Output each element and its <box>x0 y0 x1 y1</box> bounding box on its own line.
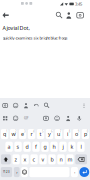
staticText: k <box>70 143 73 150</box>
button[interactable] <box>57 154 65 164</box>
button[interactable]: Undo <box>31 101 42 109</box>
staticText: s <box>17 143 20 150</box>
staticText: o <box>75 130 78 138</box>
staticText: 6 <box>51 130 53 133</box>
button[interactable]: Emoji <box>10 114 21 122</box>
staticText: 5 <box>42 130 44 133</box>
staticText: d <box>25 143 28 150</box>
button[interactable]: 4 <box>28 129 35 139</box>
staticText: m <box>67 156 72 163</box>
button[interactable]: GIF <box>21 114 31 122</box>
button[interactable]: Account <box>66 12 72 18</box>
staticText: e <box>21 130 24 138</box>
staticText: p <box>84 130 87 138</box>
button[interactable]: 5 <box>37 129 44 139</box>
button[interactable] <box>66 154 74 164</box>
button[interactable]: Enter <box>79 167 89 177</box>
staticText: g <box>43 143 46 150</box>
button[interactable]: Themes <box>51 114 63 122</box>
staticText: 0 <box>87 130 89 133</box>
button[interactable]: 3 <box>19 129 26 139</box>
staticText: f <box>35 143 37 150</box>
button[interactable] <box>75 154 87 164</box>
button[interactable]: 7 <box>55 129 62 139</box>
button[interactable]: , <box>14 167 20 177</box>
button[interactable]: Clipboard <box>0 101 10 109</box>
staticText: 1 <box>6 130 8 133</box>
staticText: b <box>50 156 53 163</box>
button[interactable] <box>77 142 85 152</box>
staticText: 9 <box>78 130 80 133</box>
button[interactable] <box>30 154 38 164</box>
staticText: i <box>67 130 68 138</box>
button[interactable] <box>12 154 20 164</box>
staticText: 7 <box>60 130 62 133</box>
staticText: h <box>52 143 55 150</box>
staticText: GIF <box>24 116 28 120</box>
button[interactable] <box>5 142 13 152</box>
button[interactable]: Search <box>56 12 62 18</box>
staticText: r <box>30 130 32 138</box>
staticText: j <box>62 143 63 150</box>
button[interactable]: Back <box>2 12 9 19</box>
button[interactable] <box>68 142 76 152</box>
button[interactable]: Clipboard <box>40 114 51 122</box>
staticText: , <box>16 168 17 175</box>
staticText: . <box>74 168 75 175</box>
staticText: x <box>24 156 27 163</box>
staticText: c <box>32 156 35 163</box>
button[interactable]: Voice input <box>74 114 85 122</box>
button[interactable]: 8 <box>64 129 71 139</box>
staticText: t <box>39 130 41 138</box>
staticText: y <box>48 130 51 138</box>
staticText: l <box>80 143 81 150</box>
button[interactable] <box>41 142 49 152</box>
button[interactable] <box>59 142 67 152</box>
button[interactable]: Stickers <box>10 101 21 109</box>
button[interactable] <box>1 154 11 164</box>
staticText: quickly examines six bright blue frogs <box>2 35 67 40</box>
staticText: 8 <box>69 130 71 133</box>
button[interactable] <box>21 167 28 177</box>
button[interactable] <box>32 142 40 152</box>
staticText: u <box>57 130 60 138</box>
button[interactable]: . <box>71 167 78 177</box>
button[interactable]: More options <box>80 102 87 109</box>
button[interactable]: Contacts <box>21 101 31 109</box>
button[interactable]: 9 <box>73 129 80 139</box>
button[interactable]: 1 <box>1 129 8 139</box>
button[interactable]: Settings <box>63 114 74 122</box>
button[interactable]: 2 <box>10 129 17 139</box>
staticText: z <box>15 156 18 163</box>
button[interactable] <box>23 142 31 152</box>
button[interactable]: Keyboard layout <box>0 114 10 122</box>
staticText: 2 <box>15 130 17 133</box>
button[interactable]: Search <box>42 101 52 109</box>
button[interactable]: More options <box>77 12 83 19</box>
staticText: n <box>59 156 62 163</box>
button[interactable] <box>21 154 29 164</box>
staticText: 3:45 <box>75 1 82 7</box>
staticText: ?123 <box>3 170 10 174</box>
button[interactable] <box>48 154 56 164</box>
staticText: 3 <box>24 130 26 133</box>
button[interactable] <box>39 154 47 164</box>
button[interactable] <box>50 142 58 152</box>
button[interactable]: 0 <box>82 129 89 139</box>
button[interactable]: ?123 <box>1 167 12 177</box>
staticText: q <box>3 130 6 138</box>
staticText: 4 <box>33 130 35 133</box>
staticText: A jovial Dot, <box>2 24 29 31</box>
button[interactable] <box>14 142 22 152</box>
staticText: w <box>12 130 16 138</box>
staticText: v <box>41 156 44 163</box>
staticText: a <box>8 143 11 150</box>
button[interactable]: 6 <box>46 129 53 139</box>
